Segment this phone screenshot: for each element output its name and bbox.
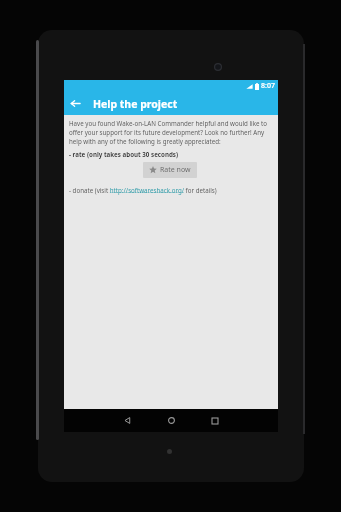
button[interactable]: Back [105, 409, 149, 432]
staticText: 8:07 [261, 81, 275, 91]
staticText: - rate (only takes about 30 seconds) [69, 150, 179, 158]
button[interactable]: - donate (visit http://softwareshack.org… [69, 186, 217, 194]
button[interactable]: Rate now [143, 162, 197, 178]
button[interactable]: Navigate up [64, 92, 87, 115]
staticText: Rate now [160, 165, 191, 175]
button[interactable]: Home [149, 409, 193, 432]
staticText: Help the project [93, 97, 178, 111]
button[interactable]: Recent apps [193, 409, 237, 432]
staticText: Have you found Wake-on-LAN Commander hel… [69, 119, 273, 146]
